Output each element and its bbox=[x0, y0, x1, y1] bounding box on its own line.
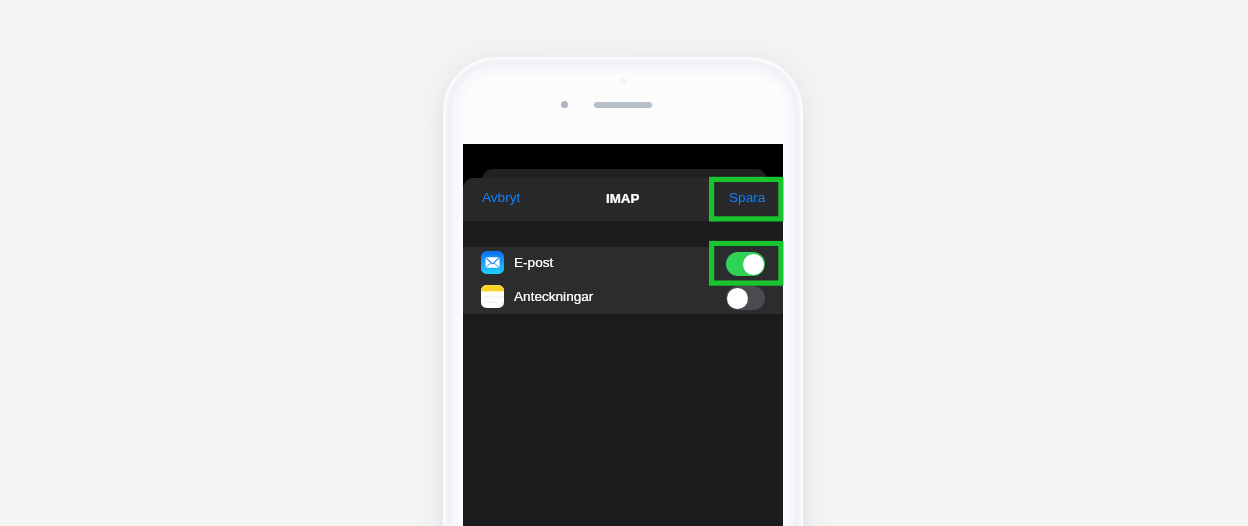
button[interactable]: E-post bbox=[463, 247, 783, 280]
button[interactable]: Avbryt bbox=[470, 178, 533, 221]
staticText: IMAP bbox=[606, 191, 640, 206]
staticText: Anteckningar bbox=[514, 289, 594, 304]
staticText: Avbryt bbox=[482, 190, 521, 205]
button[interactable]: Spara bbox=[709, 178, 783, 221]
button[interactable]: Anteckningar bbox=[463, 281, 783, 314]
button[interactable]: Anteckningar off bbox=[726, 286, 765, 310]
button[interactable]: E-post on bbox=[726, 252, 765, 276]
staticText: Spara bbox=[729, 190, 766, 205]
staticText: E-post bbox=[514, 255, 554, 270]
